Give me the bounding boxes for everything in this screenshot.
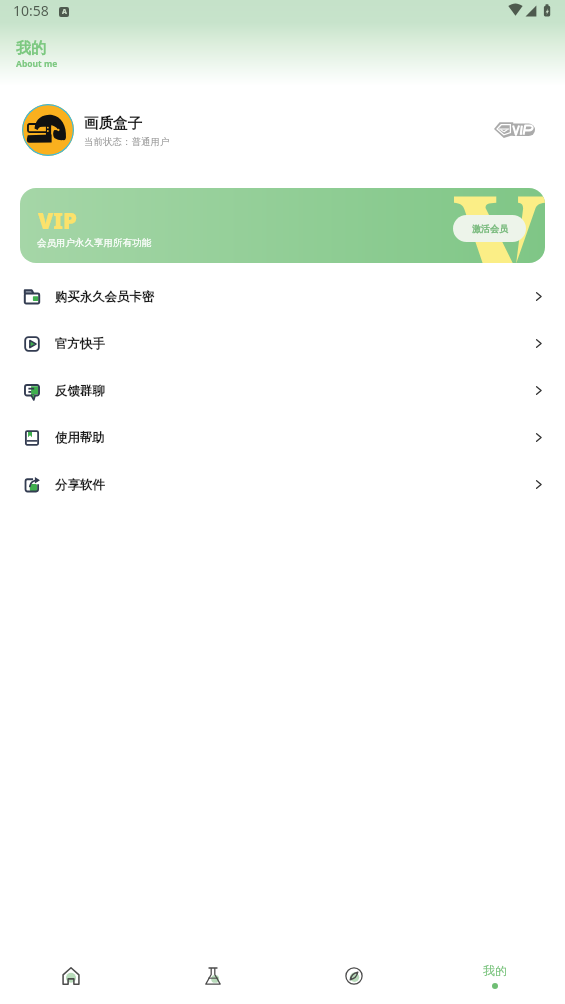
button[interactable]: 激活会员: [453, 215, 526, 242]
staticText: 激活会员: [472, 223, 508, 234]
button[interactable]: 使用帮助: [0, 414, 565, 461]
staticText: VIP: [38, 205, 77, 235]
staticText: 分享软件: [55, 477, 105, 493]
staticText: 购买永久会员卡密: [55, 289, 155, 305]
staticText: 反馈群聊: [55, 383, 105, 399]
staticText: 使用帮助: [55, 430, 105, 446]
button[interactable]: 我的: [424, 946, 565, 1004]
button[interactable]: 反馈群聊: [0, 367, 565, 414]
staticText: About me: [16, 58, 58, 70]
staticText: A: [62, 7, 67, 17]
button[interactable]: VIP: [20, 188, 545, 263]
staticText: 我的: [16, 39, 46, 58]
button[interactable]: Tools: [142, 946, 283, 1004]
button[interactable]: 购买永久会员卡密: [0, 273, 565, 320]
button[interactable]: 分享软件: [0, 461, 565, 508]
button[interactable]: 官方快手: [0, 320, 565, 367]
staticText: 官方快手: [55, 336, 105, 352]
button[interactable]: Explore: [283, 946, 424, 1004]
staticText: 10:58: [13, 1, 49, 20]
button[interactable]: Home: [0, 946, 142, 1004]
staticText: 画质盒子: [84, 114, 142, 132]
staticText: 当前状态：普通用户: [84, 136, 170, 148]
staticText: 我的: [483, 963, 507, 978]
staticText: 会员用户永久享用所有功能: [37, 237, 151, 249]
